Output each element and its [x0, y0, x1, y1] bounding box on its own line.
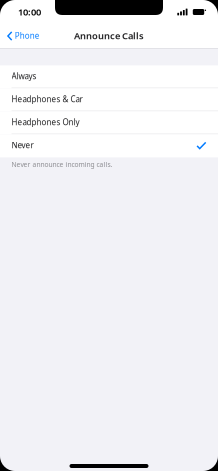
staticText: Never [11, 140, 33, 150]
staticText: Headphones Only [11, 117, 79, 127]
button[interactable]: Headphones Only [0, 111, 218, 134]
button[interactable]: Phone [0, 27, 46, 47]
staticText: Headphones & Car [11, 94, 82, 104]
button[interactable]: Headphones & Car [0, 88, 218, 111]
button[interactable]: Never [0, 134, 218, 157]
staticText: Always [11, 71, 36, 81]
staticText: Never announce incoming calls. [11, 160, 112, 169]
staticText: 10:00 [18, 6, 41, 18]
staticText: Announce Calls [74, 30, 144, 42]
button[interactable]: Always [0, 65, 218, 88]
staticText: Phone [15, 30, 40, 41]
